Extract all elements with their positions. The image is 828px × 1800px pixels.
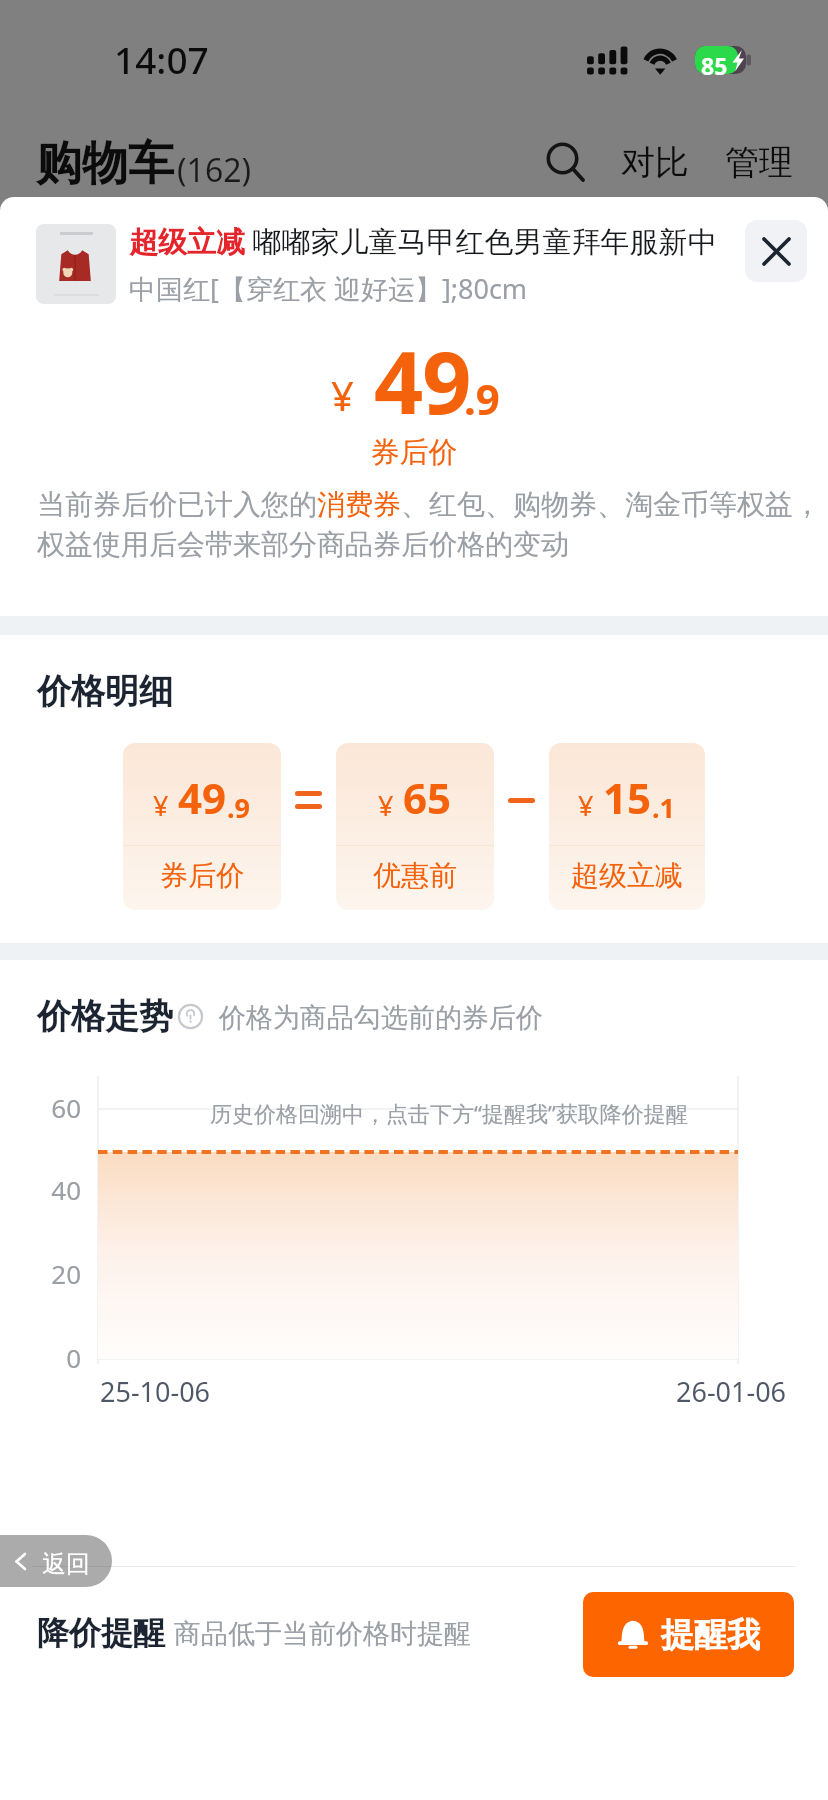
staticText: 历史价格回溯中，点击下方“提醒我”获取降价提醒 <box>210 1098 688 1128</box>
button[interactable]: ¥ <box>123 743 281 910</box>
staticText: 管理 <box>725 141 793 184</box>
button[interactable]: 管理 <box>725 141 793 184</box>
button[interactable]: 提醒我 <box>583 1592 794 1677</box>
staticText: 价格明细 <box>37 670 173 713</box>
staticText: 券后价 <box>123 858 281 893</box>
staticText: 60 <box>31 1090 81 1125</box>
staticText: 价格走势 <box>37 995 173 1038</box>
staticText: 降价提醒 <box>37 1613 165 1653</box>
button[interactable]: ¥ <box>336 743 494 910</box>
staticText: .9 <box>227 789 251 826</box>
button[interactable]: 搜索 <box>541 138 591 188</box>
staticText: 中国红[【穿红衣 迎好运】];80cm <box>129 270 528 307</box>
staticText: .1 <box>652 789 676 826</box>
staticText: 26-01-06 <box>676 1373 787 1410</box>
staticText: 提醒我 <box>661 1614 760 1656</box>
button[interactable]: 关闭 <box>745 220 807 282</box>
staticText: 返回 <box>42 1549 90 1579</box>
staticText: 20 <box>31 1256 81 1291</box>
staticText: ¥ <box>153 787 169 824</box>
staticText: ¥ <box>331 368 354 422</box>
staticText: 价格为商品勾选前的券后价 <box>219 1001 543 1035</box>
staticText: 15 <box>603 769 652 826</box>
staticText: .9 <box>464 370 500 427</box>
staticText: 85 <box>701 50 728 78</box>
staticText: 超级立减 嘟嘟家儿童马甲红色男童拜年服新中 <box>129 221 717 261</box>
staticText: 当前券后价已计入您的消费券、红包、购物券、淘金币等权益， 权益使用后会带来部分商… <box>37 487 827 562</box>
staticText: 25-10-06 <box>100 1373 211 1410</box>
staticText: 65 <box>403 769 452 826</box>
staticText: 对比 <box>621 141 689 184</box>
staticText: 49 <box>374 322 471 439</box>
staticText: (162) <box>177 148 252 192</box>
staticText: 14:07 <box>114 34 209 84</box>
staticText: 券后价 <box>0 434 828 471</box>
staticText: 商品低于当前价格时提醒 <box>174 1617 471 1651</box>
staticText: 49 <box>178 769 227 826</box>
staticText: 优惠前 <box>336 858 494 893</box>
button[interactable]: 返回 <box>0 1535 112 1587</box>
staticText: ¥ <box>378 787 394 824</box>
button[interactable]: 对比 <box>621 141 689 184</box>
staticText: 购物车 <box>36 135 174 193</box>
staticText: ¥ <box>578 787 594 824</box>
button[interactable]: ¥ <box>549 743 705 910</box>
staticText: 0 <box>31 1340 81 1375</box>
staticText: 超级立减 <box>549 858 705 893</box>
staticText: 40 <box>31 1172 81 1207</box>
